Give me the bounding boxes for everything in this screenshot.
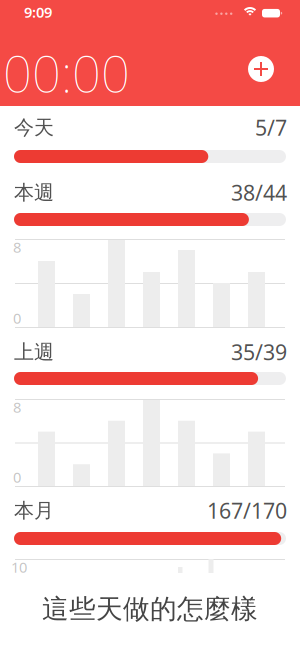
- staticText: 本月: [14, 498, 54, 523]
- staticText: 8: [13, 397, 21, 417]
- staticText: 今天: [14, 115, 54, 140]
- staticText: 9:09: [24, 2, 52, 22]
- staticText: 00:00: [3, 39, 130, 106]
- staticText: 這些天做的怎麼樣: [42, 593, 258, 625]
- staticText: 167/170: [207, 496, 287, 525]
- staticText: 35/39: [231, 338, 287, 366]
- staticText: 本週: [14, 180, 54, 205]
- staticText: 0: [13, 467, 21, 487]
- staticText: 38/44: [231, 178, 287, 207]
- staticText: 0: [13, 308, 21, 328]
- staticText: 5/7: [255, 113, 287, 142]
- staticText: 上週: [14, 340, 54, 364]
- staticText: 10: [11, 557, 27, 577]
- staticText: 8: [13, 237, 21, 257]
